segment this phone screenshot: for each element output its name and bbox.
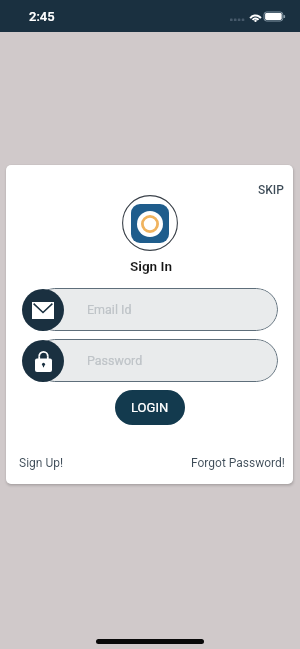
other: Battery — [264, 12, 285, 21]
staticText: Email Id — [87, 302, 132, 317]
other: Wi-Fi — [249, 12, 262, 22]
other: Signal — [230, 16, 244, 21]
staticText: Sign In — [130, 258, 173, 274]
staticText: 2:45 — [29, 9, 55, 24]
staticText: SKIP — [258, 183, 284, 197]
button[interactable]: Sign Up! — [13, 452, 69, 474]
button[interactable]: SKIP — [252, 179, 290, 201]
staticText: Password — [87, 353, 143, 368]
button[interactable]: Forgot Password! — [185, 452, 291, 474]
button[interactable]: Password — [22, 339, 278, 382]
button[interactable]: LOGIN — [115, 390, 185, 425]
staticText: LOGIN — [131, 400, 169, 415]
staticText: Forgot Password! — [191, 456, 285, 470]
button[interactable]: Email Id — [22, 288, 278, 331]
staticText: Sign Up! — [19, 456, 63, 470]
